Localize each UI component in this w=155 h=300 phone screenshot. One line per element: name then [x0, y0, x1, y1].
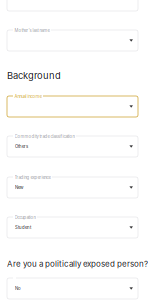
staticText: New — [15, 185, 23, 190]
button[interactable]: New — [7, 177, 138, 198]
staticText: Background — [7, 70, 61, 81]
staticText: Trading experience — [14, 175, 50, 180]
staticText: Commodity trade classification — [14, 134, 74, 139]
button[interactable]: Student — [7, 217, 138, 238]
staticText: No — [15, 286, 21, 291]
staticText: Mother's last name — [14, 28, 49, 33]
button[interactable]: Others — [7, 136, 138, 157]
staticText: Student — [15, 225, 31, 230]
staticText: Occupation — [14, 215, 35, 220]
staticText: Others — [15, 144, 28, 149]
button[interactable] — [7, 30, 138, 51]
button[interactable] — [7, 96, 138, 117]
staticText: Annual income — [14, 94, 41, 99]
button[interactable]: No — [7, 278, 138, 299]
staticText: Are you a politically exposed person? — [7, 259, 148, 269]
